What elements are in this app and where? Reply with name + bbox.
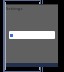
staticText: Settings [6,6,23,11]
button[interactable] [9,31,55,39]
